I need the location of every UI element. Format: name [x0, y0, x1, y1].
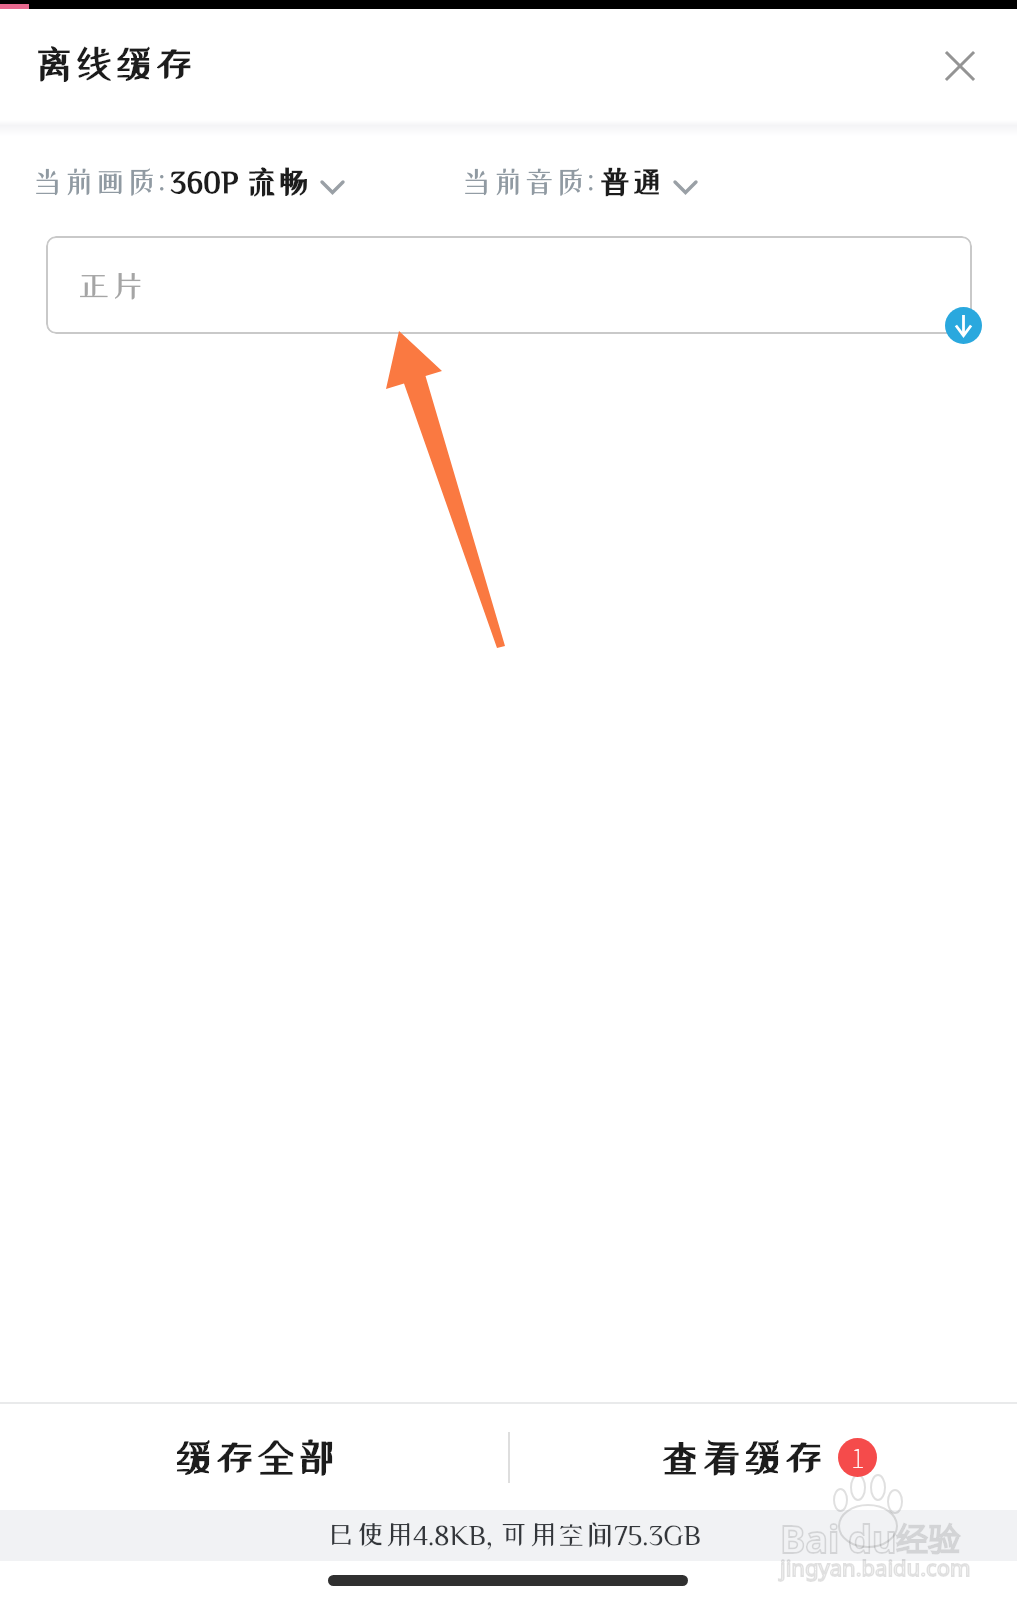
staticText: 普通 [599, 166, 663, 197]
staticText: 正片 [77, 269, 145, 302]
button[interactable]: 缓存全部 [0, 1404, 509, 1510]
staticText: 360P 流畅 [170, 166, 310, 197]
staticText: 离线缓存 [34, 44, 194, 83]
staticText: 当前音质 [460, 166, 587, 197]
button[interactable]: 正片 [46, 236, 972, 334]
staticText: 1 [851, 1438, 865, 1476]
button[interactable]: Close [925, 31, 995, 101]
staticText: 当前画质 [31, 166, 158, 197]
staticText: 己使用4.8KB, 可用空间75.3GB [327, 1520, 701, 1548]
staticText: : [587, 163, 595, 194]
staticText: : [158, 163, 166, 194]
staticText: 缓存全部 [173, 1437, 337, 1477]
button[interactable]: 当前画质 [31, 166, 348, 197]
button[interactable]: Download [945, 307, 982, 344]
button[interactable]: 当前音质 [460, 166, 701, 197]
staticText: 查看缓存 [660, 1437, 824, 1477]
button[interactable]: 查看缓存 [509, 1404, 1017, 1510]
